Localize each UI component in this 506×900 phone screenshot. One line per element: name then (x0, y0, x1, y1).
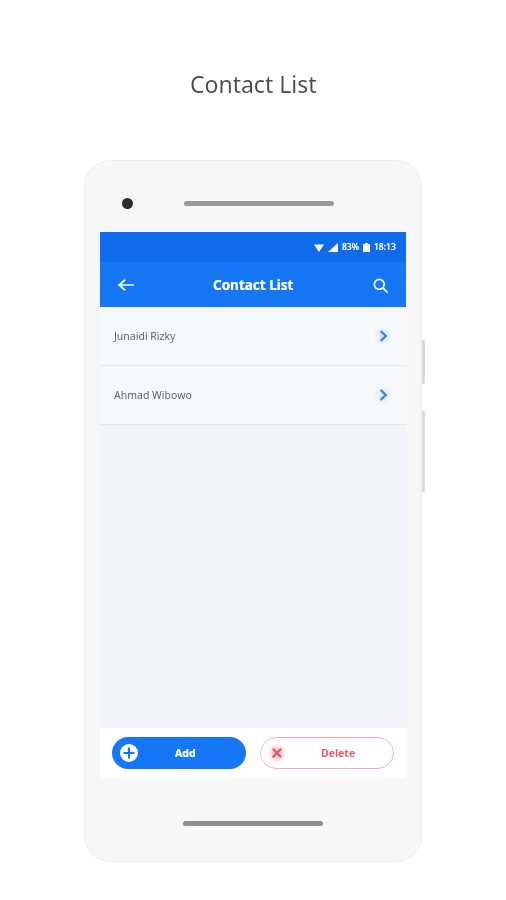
button[interactable]: Ahmad Wibowo (100, 366, 406, 424)
button[interactable]: Delete (260, 737, 394, 769)
staticText: Ahmad Wibowo (114, 388, 192, 402)
button[interactable]: Junaidi Rizky (100, 307, 406, 365)
staticText: Add (175, 746, 196, 760)
staticText: 18:13 (374, 241, 396, 253)
staticText: Contact List (213, 276, 294, 294)
button[interactable]: Search (364, 269, 396, 301)
button[interactable]: Back (110, 269, 142, 301)
button[interactable]: Add (112, 737, 246, 769)
staticText: Contact List (190, 68, 317, 99)
staticText: Delete (321, 746, 356, 760)
staticText: 83% (342, 241, 359, 253)
staticText: Junaidi Rizky (114, 329, 176, 343)
